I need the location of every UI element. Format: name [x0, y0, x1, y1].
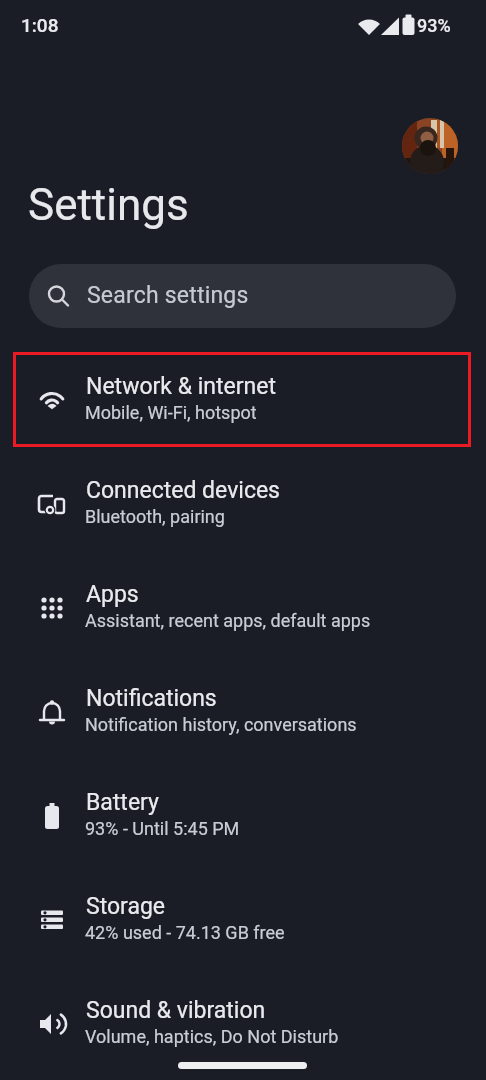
- button[interactable]: Notifications: [0, 660, 486, 764]
- staticText: 93%: [417, 15, 451, 36]
- button[interactable]: [402, 118, 458, 174]
- button[interactable]: Storage: [0, 868, 486, 972]
- staticText: Assistant, recent apps, default apps: [85, 610, 371, 631]
- staticText: Bluetooth, pairing: [85, 506, 225, 527]
- staticText: 1:08: [21, 14, 59, 36]
- staticText: Sound & vibration: [86, 997, 266, 1024]
- staticText: Notification history, conversations: [85, 714, 357, 735]
- staticText: Notifications: [86, 685, 217, 712]
- button[interactable]: Apps: [0, 556, 486, 660]
- staticText: Battery: [86, 789, 159, 816]
- staticText: Settings: [28, 179, 189, 231]
- button[interactable]: Sound & vibration: [0, 972, 486, 1076]
- button[interactable]: Connected devices: [0, 452, 486, 556]
- staticText: 42% used - 74.13 GB free: [85, 922, 285, 943]
- staticText: Storage: [86, 893, 166, 920]
- button[interactable]: Battery: [0, 764, 486, 868]
- staticText: 93% - Until 5:45 PM: [85, 818, 240, 839]
- staticText: Connected devices: [86, 477, 280, 504]
- staticText: Search settings: [87, 282, 249, 309]
- staticText: Volume, haptics, Do Not Disturb: [85, 1026, 339, 1047]
- staticText: Mobile, Wi-Fi, hotspot: [85, 402, 257, 423]
- staticText: Network & internet: [86, 373, 276, 400]
- staticText: Apps: [86, 581, 139, 608]
- button[interactable]: Network & internet: [0, 348, 486, 452]
- button[interactable]: Search settings: [29, 264, 456, 328]
